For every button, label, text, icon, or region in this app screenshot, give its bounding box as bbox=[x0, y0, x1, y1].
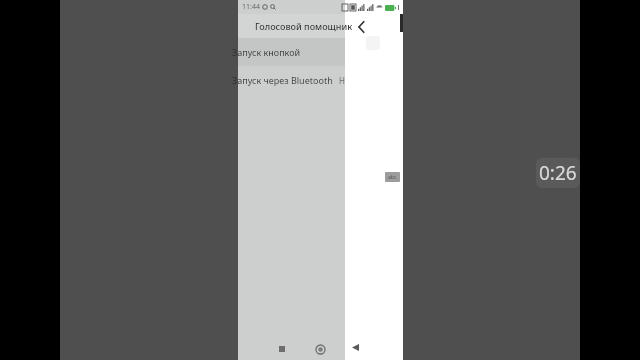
staticText: Голосовой помощник bbox=[255, 20, 353, 32]
button[interactable]: Back bbox=[348, 340, 362, 354]
staticText: Запуск кнопкой bbox=[232, 46, 301, 58]
button[interactable]: Back bbox=[350, 16, 372, 38]
button[interactable]: Home bbox=[312, 341, 328, 357]
button[interactable]: Запуск кнопкой bbox=[238, 38, 345, 66]
staticText: 0:26 bbox=[539, 160, 577, 186]
button[interactable]: Запуск через Bluetooth bbox=[238, 66, 345, 94]
button[interactable]: Recents bbox=[274, 341, 290, 357]
staticText: abc bbox=[388, 174, 397, 181]
staticText: 11:44 bbox=[242, 2, 260, 12]
staticText: Не bbox=[339, 75, 345, 86]
staticText: Запуск через Bluetooth bbox=[232, 74, 333, 86]
